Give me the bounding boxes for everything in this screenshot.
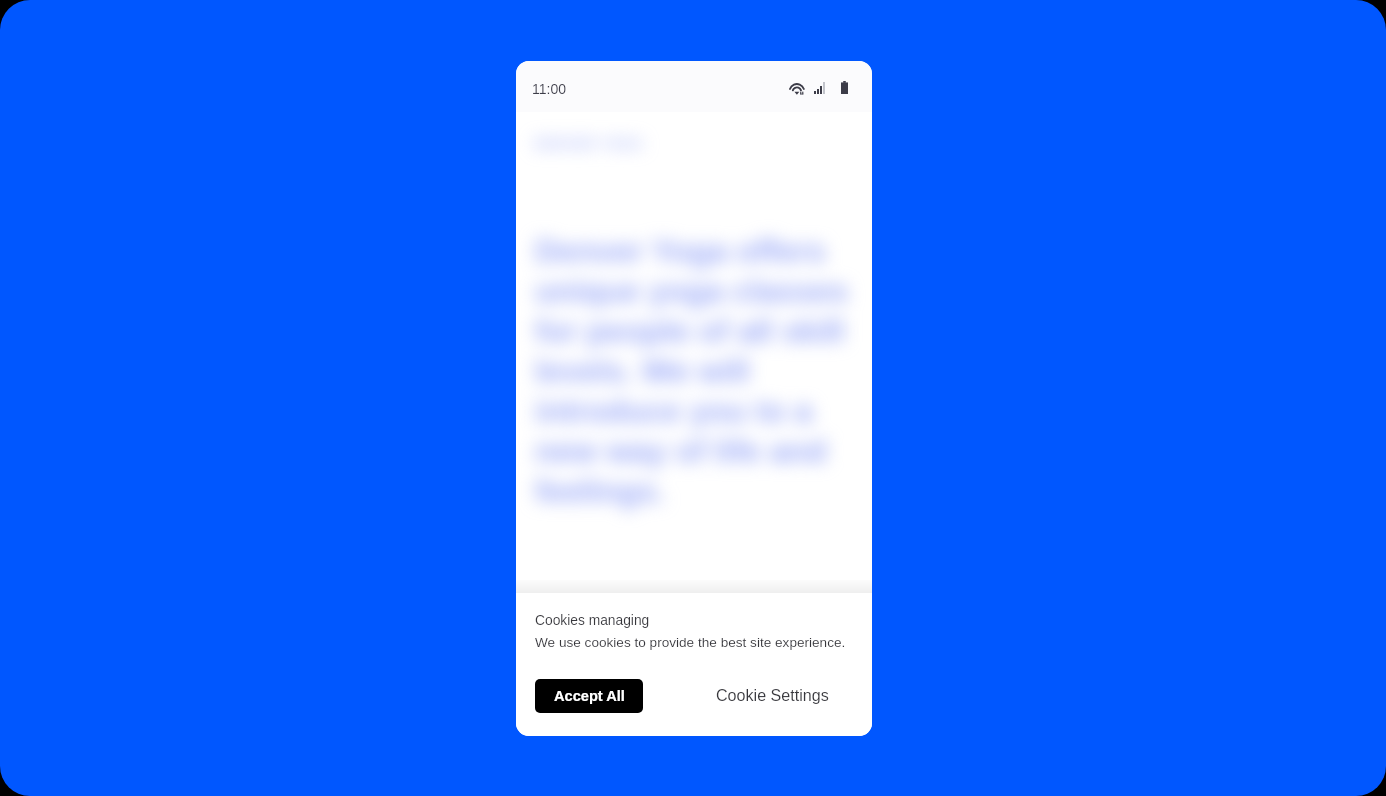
staticText: 11:00 xyxy=(532,81,566,97)
staticText: We use cookies to provide the best site … xyxy=(535,635,846,650)
staticText: Cookie Settings xyxy=(716,686,829,704)
button[interactable]: Accept All xyxy=(535,679,643,713)
other: Wi-Fi xyxy=(790,81,805,95)
button[interactable]: Cookie Settings xyxy=(706,678,838,712)
other: Mobile signal xyxy=(814,82,826,94)
staticText: Denver Yoga offers unique yoga classes f… xyxy=(535,233,851,509)
staticText: Cookies managing xyxy=(535,613,650,628)
other: Battery xyxy=(841,81,848,94)
staticText: Accept All xyxy=(554,688,625,704)
